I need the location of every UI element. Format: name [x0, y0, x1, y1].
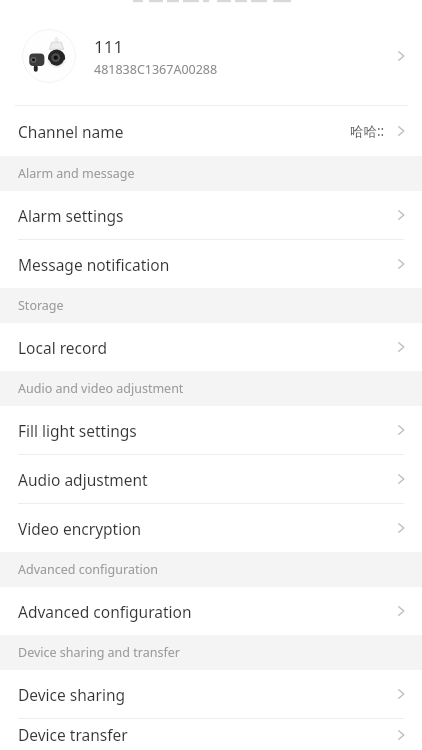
- button[interactable]: Advanced configuration: [0, 587, 422, 635]
- staticText: Video encryption: [18, 518, 394, 539]
- other: Device sharing: [394, 684, 408, 704]
- other: Channel name: [394, 121, 408, 141]
- button[interactable]: Message notification: [0, 240, 422, 288]
- button[interactable]: Video encryption: [0, 504, 422, 552]
- staticText: Advanced configuration: [18, 601, 394, 622]
- other: Fill light settings: [394, 420, 408, 440]
- staticText: Alarm and message: [18, 165, 135, 182]
- button[interactable]: 111: [0, 7, 422, 105]
- staticText: Alarm settings: [18, 205, 394, 226]
- staticText: Audio adjustment: [18, 469, 394, 490]
- other: Device transfer: [394, 725, 408, 745]
- staticText: Audio and video adjustment: [18, 380, 184, 397]
- other: Local record: [394, 337, 408, 357]
- staticText: Device sharing and transfer: [18, 644, 180, 661]
- staticText: Device sharing: [18, 684, 394, 705]
- staticText: Fill light settings: [18, 420, 394, 441]
- staticText: Channel name: [18, 121, 350, 142]
- button[interactable]: Device transfer: [0, 719, 422, 750]
- staticText: Device transfer: [18, 724, 394, 745]
- staticText: 哈哈::: [350, 122, 385, 140]
- button[interactable]: Audio adjustment: [0, 455, 422, 503]
- staticText: Local record: [18, 337, 394, 358]
- staticText: 481838C1367A00288: [94, 61, 218, 78]
- other: Alarm settings: [394, 205, 408, 225]
- staticText: Storage: [18, 297, 64, 314]
- button[interactable]: Local record: [0, 323, 422, 371]
- button[interactable]: Alarm settings: [0, 191, 422, 239]
- staticText: Advanced configuration: [18, 561, 158, 578]
- other: Video encryption: [394, 518, 408, 538]
- button[interactable]: Fill light settings: [0, 406, 422, 454]
- button[interactable]: Device sharing: [0, 670, 422, 718]
- staticText: 111: [94, 35, 124, 58]
- button[interactable]: Channel name: [0, 106, 422, 156]
- other: Advanced configuration: [394, 601, 408, 621]
- other: Message notification: [394, 254, 408, 274]
- other: Audio adjustment: [394, 469, 408, 489]
- other: Device details: [394, 46, 408, 66]
- staticText: Message notification: [18, 254, 394, 275]
